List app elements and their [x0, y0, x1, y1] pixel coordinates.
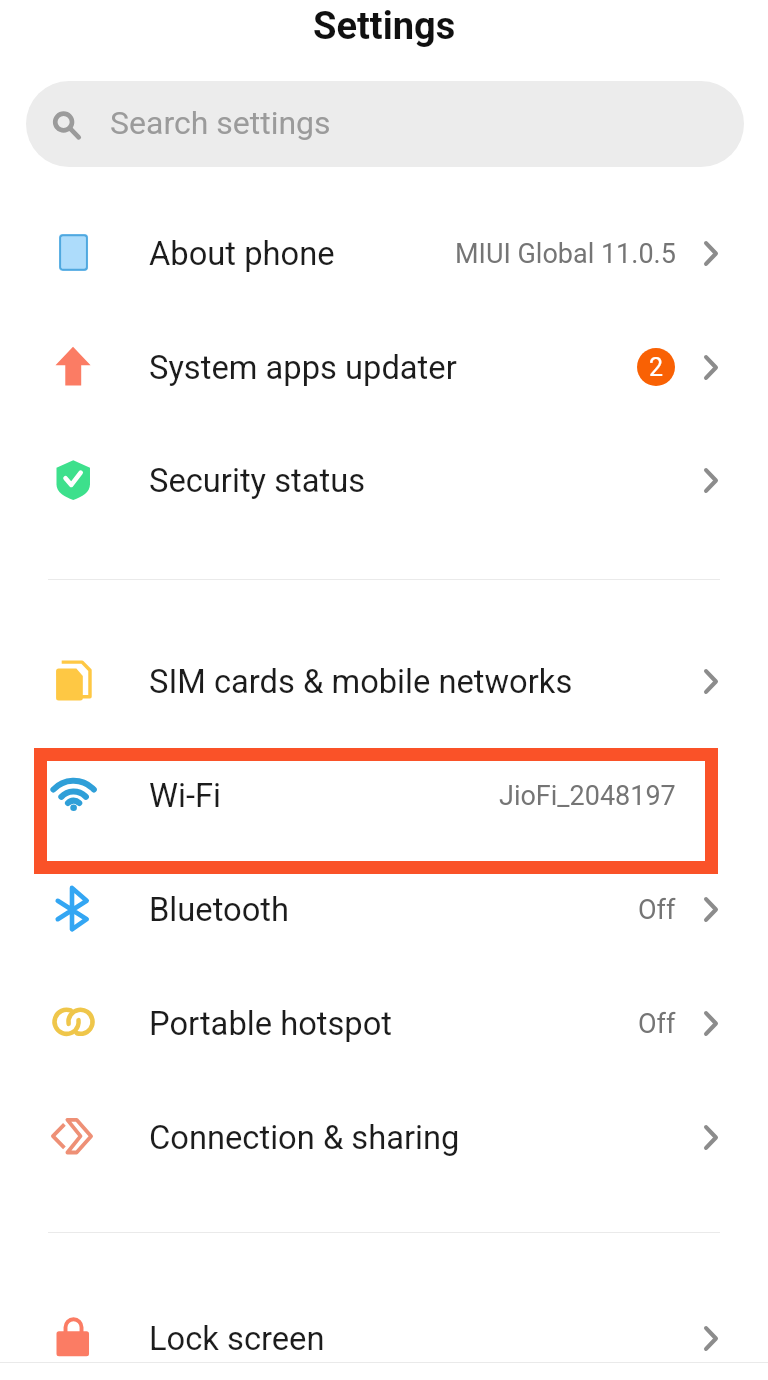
button[interactable]: Search settings: [26, 81, 744, 167]
staticText: Portable hotspot: [149, 1005, 393, 1043]
button[interactable]: Connection & sharing: [0, 1081, 768, 1194]
button[interactable]: Bluetooth: [0, 853, 768, 966]
button[interactable]: System apps updater: [0, 311, 768, 424]
staticText: 2: [649, 353, 664, 382]
staticText: Search settings: [110, 104, 331, 142]
button[interactable]: Lock screen: [0, 1282, 768, 1380]
staticText: Off: [638, 894, 676, 926]
staticText: Settings: [313, 4, 456, 49]
staticText: MIUI Global 11.0.5: [455, 238, 676, 270]
button[interactable]: SIM cards & mobile networks: [0, 625, 768, 738]
staticText: Security status: [149, 462, 366, 500]
staticText: System apps updater: [149, 349, 457, 387]
button[interactable]: Portable hotspot: [0, 967, 768, 1080]
staticText: Bluetooth: [149, 891, 290, 929]
staticText: Wi-Fi: [149, 777, 221, 815]
staticText: About phone: [149, 235, 335, 273]
button[interactable]: Security status: [0, 424, 768, 537]
staticText: Lock screen: [149, 1320, 325, 1358]
button[interactable]: Wi-Fi: [0, 739, 768, 852]
staticText: JioFi_2048197: [499, 780, 676, 812]
button[interactable]: About phone: [0, 197, 768, 310]
staticText: Connection & sharing: [149, 1119, 460, 1157]
staticText: SIM cards & mobile networks: [149, 663, 573, 701]
staticText: Off: [638, 1008, 676, 1040]
